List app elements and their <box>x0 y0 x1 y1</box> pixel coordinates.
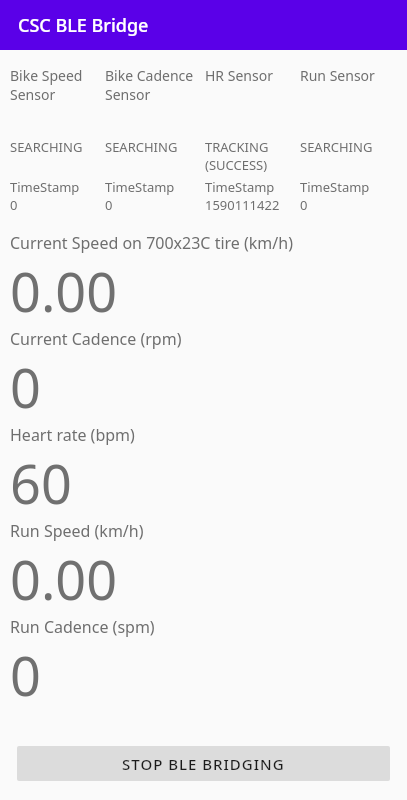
staticText: CSC BLE Bridge <box>18 13 149 38</box>
button[interactable]: STOP BLE BRIDGING <box>17 746 390 781</box>
staticText: TRACKING (SUCCESS) <box>205 138 296 174</box>
staticText: Run Speed (km/h) <box>10 520 144 542</box>
staticText: Current Cadence (rpm) <box>10 328 182 350</box>
staticText: TimeStamp <box>105 178 175 196</box>
staticText: Bike Cadence Sensor <box>105 66 201 104</box>
staticText: HR Sensor <box>205 66 273 85</box>
staticText: 0 <box>10 638 41 712</box>
staticText: Run Sensor <box>300 66 375 85</box>
staticText: Heart rate (bpm) <box>10 424 135 446</box>
staticText: 60 <box>10 446 72 520</box>
staticText: Run Cadence (spm) <box>10 616 155 638</box>
staticText: SEARCHING <box>10 138 83 156</box>
staticText: Bike Speed Sensor <box>10 66 101 104</box>
staticText: TimeStamp <box>10 178 80 196</box>
staticText: 0.00 <box>10 254 118 328</box>
staticText: Current Speed on 700x23C tire (km/h) <box>10 232 293 254</box>
staticText: SEARCHING <box>105 138 178 156</box>
staticText: 0 <box>300 196 308 214</box>
staticText: 1590111422 <box>205 196 280 214</box>
staticText: STOP BLE BRIDGING <box>122 754 285 774</box>
staticText: 0.00 <box>10 542 118 616</box>
staticText: 0 <box>105 196 113 214</box>
staticText: 0 <box>10 196 18 214</box>
staticText: TimeStamp <box>205 178 275 196</box>
staticText: 0 <box>10 350 41 424</box>
staticText: TimeStamp <box>300 178 370 196</box>
staticText: SEARCHING <box>300 138 373 156</box>
